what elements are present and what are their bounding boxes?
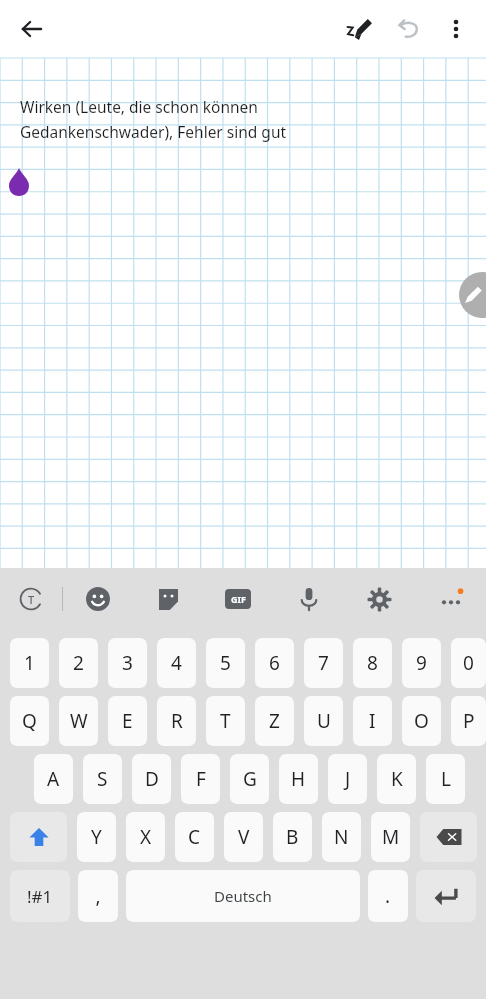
staticText: H (291, 766, 306, 792)
staticText: I (369, 708, 376, 734)
button[interactable]: Y (77, 812, 116, 862)
button[interactable]: Edit (459, 272, 486, 318)
button[interactable]: Back (10, 7, 54, 51)
staticText: X (140, 824, 152, 850)
button[interactable]: Deutsch (126, 870, 360, 922)
staticText: GIF (231, 593, 246, 605)
staticText: Q (22, 708, 37, 734)
button[interactable]: X (126, 812, 165, 862)
button[interactable]: Settings (344, 568, 415, 630)
button[interactable]: Emoji (63, 568, 133, 630)
staticText: J (345, 766, 351, 792)
button[interactable]: Undo (384, 5, 432, 53)
staticText: T (28, 592, 35, 607)
button[interactable]: 0 (451, 638, 486, 688)
staticText: Wirken (Leute, die schon können Gedanken… (20, 96, 287, 142)
staticText: C (188, 824, 201, 850)
staticText: 9 (416, 650, 427, 676)
button[interactable]: V (224, 812, 263, 862)
button[interactable]: W (59, 696, 98, 746)
staticText: N (334, 824, 349, 850)
button[interactable]: 3 (108, 638, 147, 688)
button[interactable]: K (377, 754, 416, 804)
staticText: , (95, 883, 101, 909)
staticText: . (385, 883, 391, 909)
button[interactable]: More (415, 568, 486, 630)
button[interactable]: Enter (416, 870, 476, 922)
staticText: R (171, 708, 183, 734)
staticText: 5 (220, 650, 231, 676)
staticText: F (196, 766, 206, 792)
button[interactable]: Backspace (420, 812, 477, 862)
staticText: K (391, 766, 403, 792)
button[interactable]: I (353, 696, 392, 746)
button[interactable]: D (132, 754, 171, 804)
button[interactable]: 8 (353, 638, 392, 688)
staticText: 4 (171, 650, 182, 676)
staticText: 7 (318, 650, 329, 676)
button[interactable]: F (181, 754, 220, 804)
staticText: M (382, 824, 400, 850)
button[interactable]: Shift (10, 812, 67, 862)
button[interactable]: O (402, 696, 441, 746)
staticText: Y (91, 824, 102, 850)
staticText: T (220, 708, 231, 734)
button[interactable]: C (175, 812, 214, 862)
button[interactable]: 9 (402, 638, 441, 688)
staticText: L (441, 766, 451, 792)
button[interactable]: T (206, 696, 245, 746)
button[interactable]: Z (255, 696, 294, 746)
button[interactable]: Translate (0, 568, 62, 630)
button[interactable]: 6 (255, 638, 294, 688)
button[interactable]: !#1 (10, 870, 70, 922)
button[interactable]: 2 (59, 638, 98, 688)
staticText: S (97, 766, 108, 792)
button[interactable]: P (451, 696, 486, 746)
staticText: B (286, 824, 299, 850)
staticText: G (243, 766, 257, 792)
button[interactable]: A (34, 754, 73, 804)
button[interactable]: R (157, 696, 196, 746)
button[interactable]: 4 (157, 638, 196, 688)
button[interactable]: N (322, 812, 361, 862)
button[interactable]: Draw (336, 5, 384, 53)
staticText: A (47, 766, 60, 792)
button[interactable]: B (273, 812, 312, 862)
button[interactable]: Q (10, 696, 49, 746)
button[interactable]: Stickers (133, 568, 203, 630)
button[interactable]: J (328, 754, 367, 804)
button[interactable]: , (78, 870, 118, 922)
button[interactable]: GIF (203, 568, 273, 630)
button[interactable]: 7 (304, 638, 343, 688)
button[interactable]: More options (432, 5, 480, 53)
button[interactable]: G (230, 754, 269, 804)
button[interactable]: M (371, 812, 410, 862)
staticText: U (317, 708, 331, 734)
staticText: O (414, 708, 429, 734)
button[interactable]: S (83, 754, 122, 804)
staticText: W (70, 708, 88, 734)
staticText: V (238, 824, 250, 850)
staticText: 1 (24, 650, 35, 676)
button[interactable]: L (426, 754, 465, 804)
staticText: Deutsch (214, 886, 272, 906)
staticText: 6 (269, 650, 280, 676)
staticText: 2 (73, 650, 84, 676)
button[interactable]: U (304, 696, 343, 746)
button[interactable]: 5 (206, 638, 245, 688)
staticText: E (122, 708, 133, 734)
staticText: Z (269, 708, 280, 734)
staticText: 8 (367, 650, 378, 676)
button[interactable]: E (108, 696, 147, 746)
staticText: P (463, 708, 475, 734)
button[interactable]: 1 (10, 638, 49, 688)
button[interactable]: Voice input (273, 568, 344, 630)
staticText: 3 (122, 650, 133, 676)
staticText: D (145, 766, 159, 792)
button[interactable]: . (368, 870, 408, 922)
staticText: 0 (463, 650, 474, 676)
button[interactable]: H (279, 754, 318, 804)
staticText: !#1 (27, 885, 53, 908)
